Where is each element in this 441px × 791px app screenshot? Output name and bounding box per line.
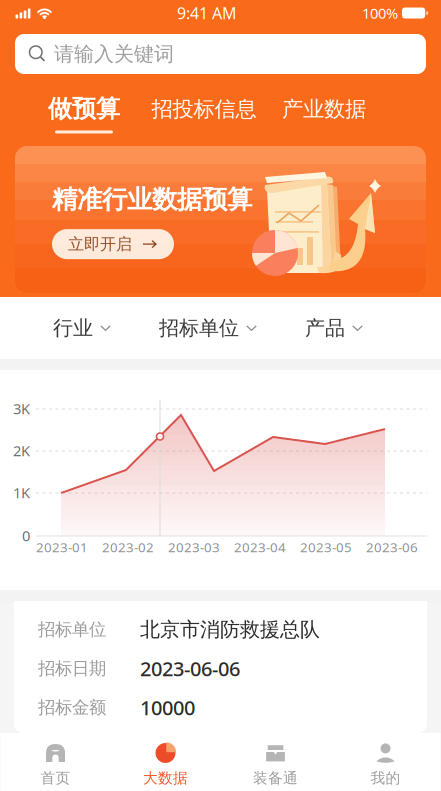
button[interactable]: 产业数据	[268, 88, 380, 138]
staticText: 首页	[40, 769, 70, 787]
staticText: 产品	[305, 316, 345, 340]
staticText: 请输入关键词	[54, 42, 174, 66]
button[interactable]: 产品	[305, 306, 363, 350]
staticText: 招标日期	[38, 658, 106, 679]
staticText: 2K	[13, 441, 30, 460]
staticText: 3K	[13, 399, 30, 418]
staticText: 北京市消防救援总队	[140, 617, 320, 642]
staticText: 立即开启	[68, 234, 132, 254]
staticText: 2023-06	[366, 538, 418, 556]
staticText: 招投标信息	[151, 96, 256, 122]
staticText: 大数据	[143, 769, 188, 787]
staticText: 2023-03	[168, 538, 220, 556]
button[interactable]: 行业	[53, 306, 111, 350]
button[interactable]: 立即开启	[52, 229, 174, 259]
staticText: 我的	[370, 769, 400, 787]
button[interactable]: 招投标信息	[140, 88, 268, 138]
staticText: 2023-06-06	[140, 655, 240, 682]
staticText: 1K	[13, 483, 30, 502]
staticText: 装备通	[253, 769, 298, 787]
staticText: 招标单位	[159, 316, 239, 340]
button[interactable]: 装备通	[220, 733, 330, 791]
button[interactable]: 招标单位	[159, 306, 257, 350]
button[interactable]: 请输入关键词	[15, 34, 426, 74]
staticText: 100%	[362, 3, 398, 23]
staticText: 2023-01	[36, 538, 88, 556]
staticText: 2023-04	[234, 538, 286, 556]
staticText: 2023-05	[300, 538, 352, 556]
staticText: 招标单位	[38, 619, 106, 640]
staticText: 产业数据	[282, 96, 366, 122]
staticText: 0	[22, 526, 30, 545]
staticText: 9:41 AM	[177, 2, 237, 24]
button[interactable]: 大数据	[110, 733, 220, 791]
staticText: 10000	[140, 694, 195, 721]
staticText: 精准行业数据预算	[52, 184, 252, 215]
button[interactable]: 做预算	[28, 88, 140, 138]
staticText: 做预算	[48, 94, 120, 123]
staticText: 2023-02	[102, 538, 154, 556]
staticText: 招标金额	[38, 697, 106, 718]
button[interactable]: 首页	[0, 733, 110, 791]
button[interactable]: 我的	[330, 733, 440, 791]
staticText: 行业	[53, 316, 93, 340]
button[interactable]: 精准行业数据预算	[15, 146, 426, 293]
